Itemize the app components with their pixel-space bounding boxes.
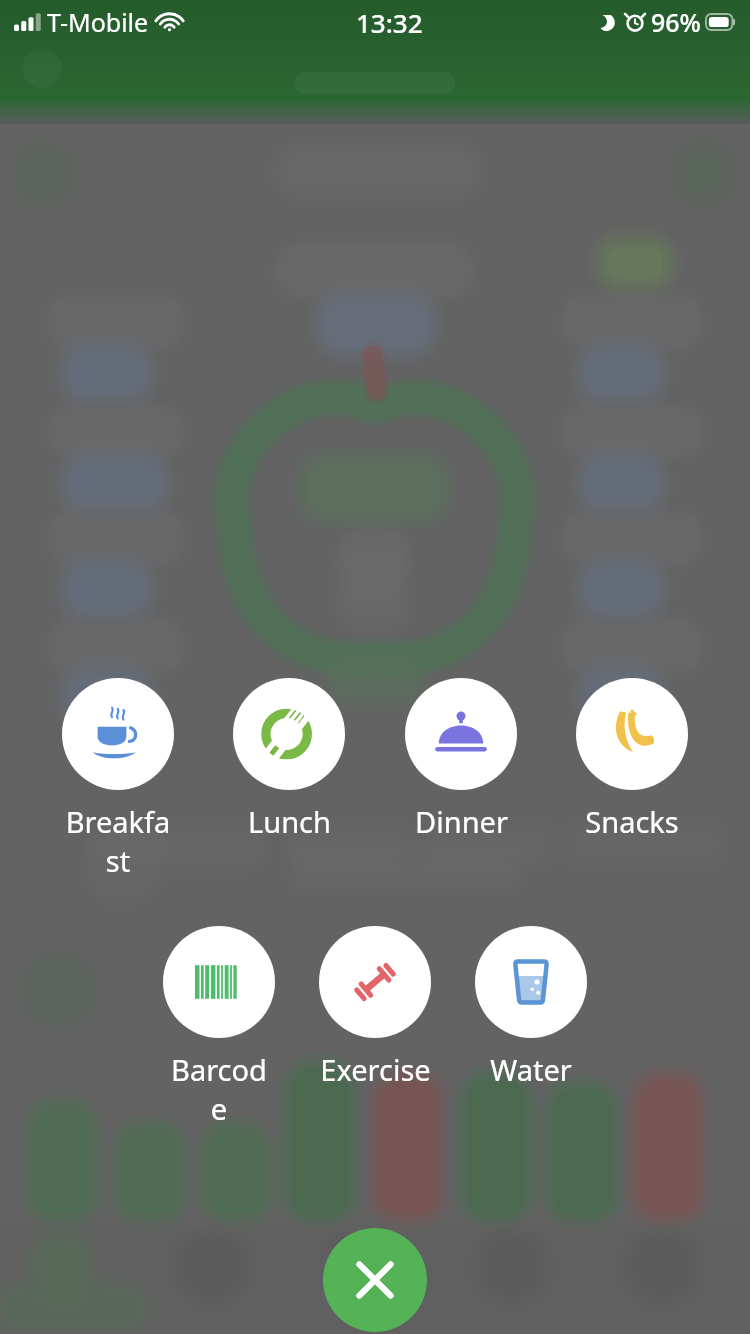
staticText: Barcode xyxy=(163,1050,275,1128)
button[interactable]: Barcode xyxy=(163,926,275,1128)
staticText: Exercise xyxy=(320,1050,431,1089)
staticText: T-Mobile xyxy=(47,5,149,39)
button[interactable]: Dinner xyxy=(405,678,517,841)
button[interactable]: Close menu xyxy=(323,1228,427,1332)
staticText: Snacks xyxy=(585,802,679,841)
staticText: Dinner xyxy=(415,802,508,841)
staticText: Breakfast xyxy=(62,802,174,880)
button[interactable]: Exercise xyxy=(319,926,431,1089)
staticText: 96% xyxy=(651,5,701,39)
staticText: Lunch xyxy=(248,802,331,841)
button[interactable]: Lunch xyxy=(233,678,345,841)
staticText: Water xyxy=(490,1050,572,1089)
staticText: 13:32 xyxy=(356,5,423,40)
button[interactable]: Snacks xyxy=(576,678,688,841)
button[interactable]: Water xyxy=(475,926,587,1089)
button[interactable]: Breakfast xyxy=(62,678,174,880)
